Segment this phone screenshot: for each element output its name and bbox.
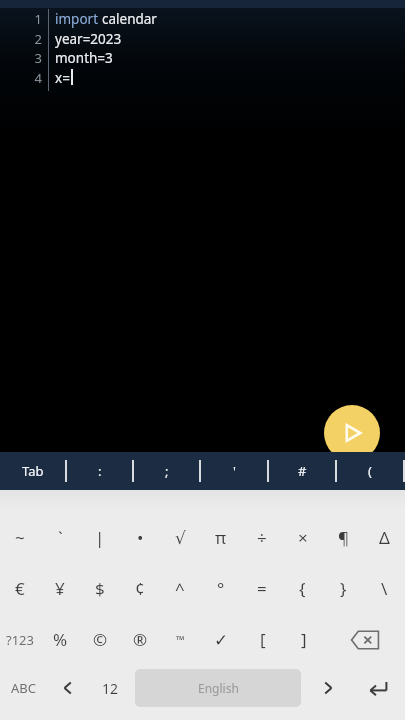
button[interactable]: ~: [0, 512, 40, 563]
staticText: ]: [301, 628, 307, 651]
staticText: :: [98, 462, 102, 480]
staticText: ×: [298, 526, 308, 549]
staticText: ^: [175, 577, 185, 600]
button[interactable]: (: [337, 452, 403, 490]
button[interactable]: Previous: [47, 665, 89, 711]
button[interactable]: =: [241, 563, 282, 614]
button[interactable]: }: [323, 563, 364, 614]
staticText: (: [368, 462, 372, 480]
staticText: ÷: [257, 526, 267, 549]
button[interactable]: Tab: [0, 452, 65, 490]
staticText: {: [299, 577, 306, 600]
staticText: ~: [15, 526, 25, 549]
staticText: Δ: [379, 526, 390, 549]
staticText: √: [175, 528, 186, 548]
button[interactable]: ×: [282, 512, 323, 563]
button[interactable]: ?123: [0, 614, 40, 665]
staticText: month=3: [55, 49, 113, 67]
button[interactable]: %: [40, 614, 80, 665]
staticText: calendar: [102, 10, 157, 28]
staticText: 3: [24, 49, 42, 67]
staticText: %: [53, 628, 68, 651]
button[interactable]: °: [200, 563, 241, 614]
button[interactable]: ;: [134, 452, 199, 490]
staticText: ¶: [338, 526, 350, 549]
staticText: ✓: [214, 630, 229, 650]
button[interactable]: ®: [120, 614, 160, 665]
staticText: year=2023: [55, 30, 122, 48]
staticText: x=: [55, 69, 70, 87]
button[interactable]: ¶: [323, 512, 364, 563]
staticText: =: [257, 577, 267, 600]
staticText: €: [15, 577, 25, 600]
button[interactable]: ©: [80, 614, 120, 665]
button[interactable]: #: [269, 452, 335, 490]
button[interactable]: ¥: [40, 563, 80, 614]
button[interactable]: π: [200, 512, 241, 563]
staticText: ¥: [55, 577, 65, 600]
button[interactable]: ÷: [241, 512, 282, 563]
staticText: [: [260, 628, 266, 651]
button[interactable]: •: [120, 512, 160, 563]
button[interactable]: 12: [89, 665, 131, 711]
button[interactable]: \: [364, 563, 405, 614]
staticText: $: [95, 577, 105, 600]
staticText: •: [137, 526, 144, 549]
button[interactable]: ]: [283, 614, 324, 665]
staticText: ¢: [135, 577, 145, 600]
staticText: ©: [93, 628, 108, 651]
button[interactable]: €: [0, 563, 40, 614]
button[interactable]: Next: [305, 665, 351, 711]
staticText: `: [58, 526, 63, 549]
button[interactable]: √: [160, 512, 200, 563]
button[interactable]: ': [201, 452, 267, 490]
staticText: °: [217, 577, 225, 600]
staticText: \: [381, 577, 388, 600]
button[interactable]: `: [40, 512, 80, 563]
staticText: 1: [24, 10, 42, 28]
staticText: ?123: [6, 631, 34, 649]
staticText: English: [198, 680, 239, 696]
staticText: ;: [165, 462, 169, 480]
staticText: ABC: [11, 679, 36, 697]
button[interactable]: [: [242, 614, 283, 665]
button[interactable]: ¢: [120, 563, 160, 614]
staticText: ®: [133, 628, 148, 651]
staticText: 4: [24, 69, 42, 87]
button[interactable]: ™: [160, 614, 201, 665]
staticText: ™: [176, 632, 185, 647]
staticText: π: [215, 526, 227, 549]
staticText: |: [95, 526, 105, 549]
staticText: Tab: [22, 462, 44, 480]
button[interactable]: Backspace: [324, 614, 405, 665]
button[interactable]: {: [282, 563, 323, 614]
button[interactable]: :: [67, 452, 132, 490]
staticText: ': [233, 462, 236, 480]
staticText: #: [298, 462, 307, 480]
button[interactable]: Δ: [364, 512, 405, 563]
button[interactable]: ABC: [0, 665, 47, 711]
staticText: 12: [102, 679, 119, 698]
button[interactable]: Enter: [351, 665, 405, 711]
button[interactable]: ^: [160, 563, 200, 614]
staticText: import: [55, 10, 102, 28]
button[interactable]: |: [80, 512, 120, 563]
button[interactable]: Run: [324, 405, 380, 461]
staticText: }: [340, 577, 347, 600]
staticText: 2: [24, 30, 42, 48]
button[interactable]: $: [80, 563, 120, 614]
button[interactable]: English: [135, 669, 301, 707]
button[interactable]: ✓: [201, 614, 242, 665]
